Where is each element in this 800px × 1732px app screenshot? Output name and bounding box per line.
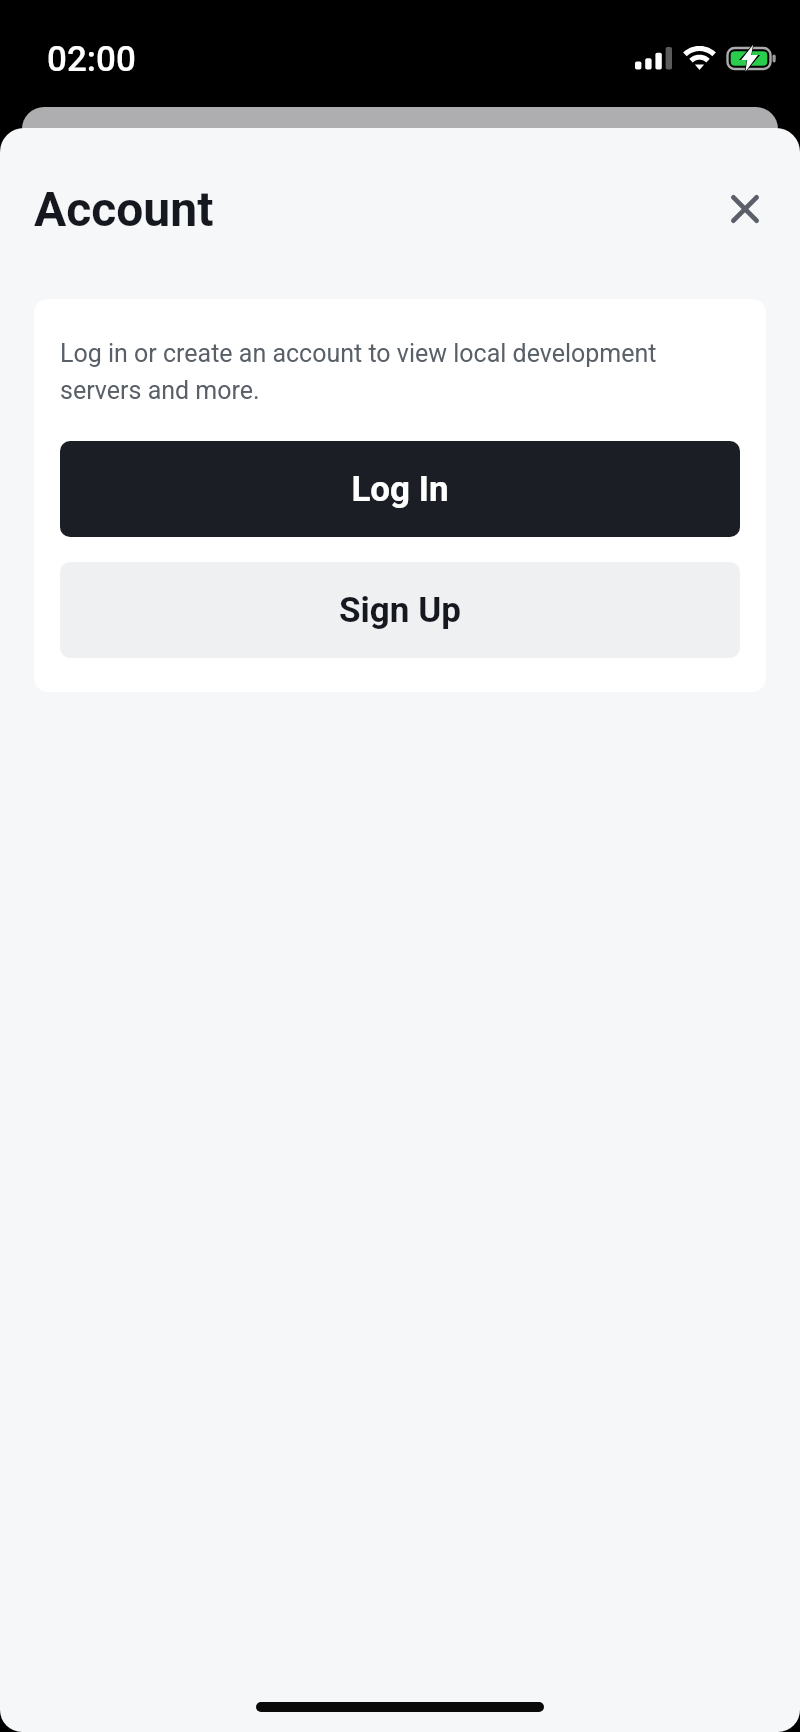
staticText: 02:00	[47, 39, 136, 80]
staticText: Sign Up	[339, 590, 461, 631]
staticText: Log in or create an account to view loca…	[60, 339, 740, 405]
button[interactable]: Log In	[60, 441, 740, 537]
button[interactable]: Sign Up	[60, 562, 740, 658]
staticText: Account	[34, 181, 214, 237]
button[interactable]: Close	[722, 186, 768, 232]
staticText: Log In	[351, 469, 449, 510]
